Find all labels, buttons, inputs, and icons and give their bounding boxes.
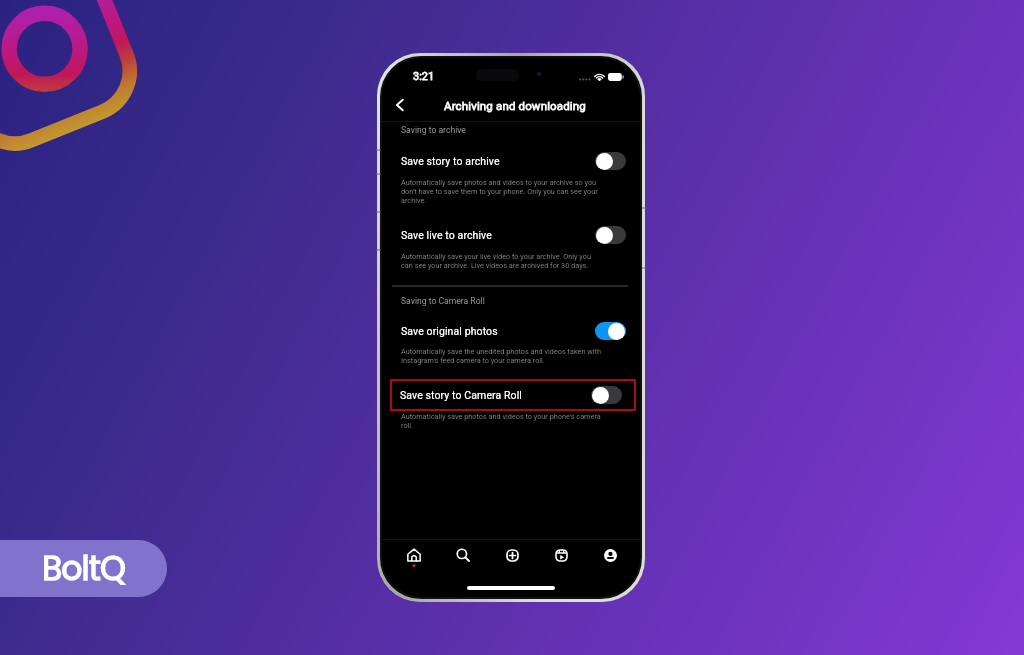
button[interactable]: Save story to archive	[391, 149, 640, 173]
staticText: Automatically save photos and videos to …	[401, 412, 601, 430]
button[interactable]: Save story to Camera Roll	[390, 379, 636, 411]
staticText: Save original photos	[401, 325, 498, 337]
staticText: 3:21	[413, 70, 435, 83]
staticText: Save story to archive	[401, 155, 500, 167]
button[interactable]: Home	[401, 542, 427, 568]
button[interactable]: Back	[387, 92, 413, 118]
button[interactable]: Create	[499, 542, 525, 568]
staticText: Saving to archive	[401, 125, 466, 135]
staticText: BoltQ	[42, 545, 125, 591]
button[interactable]: BoltQ	[0, 540, 167, 597]
staticText: Automatically save your live video to yo…	[401, 252, 591, 270]
button[interactable]: Search	[450, 542, 476, 568]
staticText: Save story to Camera Roll	[400, 389, 523, 401]
staticText: Saving to Camera Roll	[401, 296, 485, 306]
staticText: Save live to archive	[401, 229, 492, 241]
staticText: Automatically save the unedited photos a…	[401, 347, 601, 365]
button[interactable]: Save original photos	[391, 319, 640, 343]
staticText: Automatically save photos and videos to …	[401, 178, 598, 205]
staticText: Archiving and downloading	[444, 99, 586, 112]
button[interactable]: Reels	[548, 542, 574, 568]
button[interactable]: Profile	[597, 542, 623, 568]
button[interactable]: Save live to archive	[391, 223, 640, 247]
